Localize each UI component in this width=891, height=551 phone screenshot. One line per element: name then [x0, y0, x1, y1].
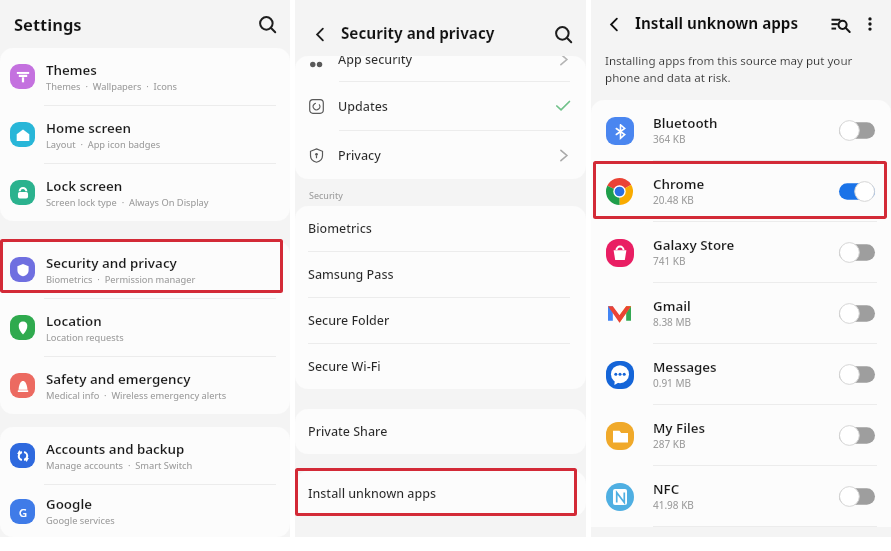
staticText: Bluetooth [653, 114, 718, 132]
staticText: Manage accounts · Smart Switch [46, 459, 193, 472]
staticText: App security [338, 56, 413, 68]
staticText: Security and privacy [341, 23, 495, 44]
button[interactable]: Switch on [839, 181, 875, 202]
staticText: Google services [46, 514, 115, 527]
button[interactable]: Secure Wi-Fi [295, 344, 586, 389]
button[interactable]: Messages [591, 344, 891, 404]
staticText: Biometrics [308, 220, 372, 237]
button[interactable]: My Files [591, 405, 891, 465]
button[interactable]: NFC [591, 466, 891, 526]
staticText: Chrome [653, 175, 705, 193]
button[interactable]: App security [295, 56, 586, 81]
button[interactable]: Sort [827, 12, 851, 36]
button[interactable]: Updates [295, 82, 586, 130]
button[interactable]: Install unknown apps [295, 471, 586, 516]
button[interactable]: Switch off [839, 425, 875, 446]
button[interactable]: Gmail [591, 283, 891, 343]
button[interactable]: Home screen [0, 106, 290, 163]
button[interactable]: Samsung Pass [295, 252, 586, 297]
staticText: 0.91 MB [653, 376, 692, 390]
staticText: Updates [338, 98, 388, 115]
button[interactable]: Private Share [295, 409, 586, 454]
button[interactable]: Safety and emergency [0, 357, 290, 414]
staticText: Private Share [308, 423, 388, 440]
button[interactable]: Privacy [295, 131, 586, 179]
staticText: Security and privacy [46, 254, 177, 272]
staticText: Samsung Pass [308, 266, 394, 283]
staticText: Safety and emergency [46, 370, 191, 388]
staticText: Secure Wi-Fi [308, 358, 381, 375]
staticText: Install unknown apps [635, 13, 799, 34]
button[interactable]: Switch off [839, 242, 875, 263]
button[interactable]: More options [861, 15, 879, 33]
button[interactable]: Back [602, 12, 626, 36]
staticText: Lock screen [46, 177, 123, 195]
staticText: Install unknown apps [308, 485, 437, 502]
button[interactable]: Secure Folder [295, 298, 586, 343]
staticText: NFC [653, 480, 680, 498]
staticText: My Files [653, 419, 706, 437]
staticText: Home screen [46, 119, 132, 137]
staticText: Accounts and backup [46, 440, 185, 458]
button[interactable]: Themes [0, 48, 290, 105]
staticText: 20.48 KB [653, 193, 694, 207]
staticText: 364 KB [653, 132, 686, 146]
staticText: Security [309, 189, 343, 201]
staticText: Biometrics · Permission manager [46, 273, 196, 286]
staticText: Location requests [46, 331, 124, 344]
staticText: Privacy [338, 147, 381, 164]
staticText: 41.98 KB [653, 498, 694, 512]
staticText: 8.38 MB [653, 315, 692, 329]
staticText: Messages [653, 358, 717, 376]
button[interactable]: Switch off [839, 486, 875, 507]
button[interactable]: Accounts and backup [0, 427, 290, 484]
button[interactable]: Search [549, 20, 577, 48]
button[interactable]: Chrome [591, 161, 891, 221]
staticText: Location [46, 312, 102, 330]
button[interactable]: G [0, 485, 290, 537]
button[interactable]: Switch off [839, 303, 875, 324]
staticText: 287 KB [653, 437, 686, 451]
staticText: Screen lock type · Always On Display [46, 196, 209, 209]
button[interactable]: Galaxy Store [591, 222, 891, 282]
button[interactable]: Back [308, 22, 332, 46]
staticText: Medical info · Wireless emergency alerts [46, 389, 227, 402]
staticText: Gmail [653, 297, 691, 315]
button[interactable]: Biometrics [295, 206, 586, 251]
button[interactable]: Bluetooth [591, 100, 891, 160]
button[interactable]: Switch off [839, 364, 875, 385]
staticText: Google [46, 495, 92, 513]
staticText: Layout · App icon badges [46, 138, 161, 151]
staticText: Secure Folder [308, 312, 390, 329]
staticText: Themes [46, 61, 97, 79]
button[interactable]: Switch off [839, 120, 875, 141]
button[interactable]: Location [0, 299, 290, 356]
staticText: Settings [14, 13, 82, 35]
button[interactable]: Search [253, 10, 281, 38]
button[interactable]: Lock screen [0, 164, 290, 221]
staticText: G [19, 505, 27, 519]
staticText: 741 KB [653, 254, 686, 268]
staticText: Galaxy Store [653, 236, 735, 254]
staticText: Themes · Wallpapers · Icons [46, 80, 177, 93]
staticText: Installing apps from this source may put… [605, 53, 853, 86]
button[interactable]: Security and privacy [0, 241, 290, 298]
